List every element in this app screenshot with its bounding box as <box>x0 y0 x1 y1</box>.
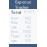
staticText: $33 <box>25 39 31 43</box>
staticText: Café <box>11 26 17 29</box>
staticText: $1,071 <box>24 10 35 14</box>
staticText: Expense Tracker <box>15 0 31 10</box>
staticText: $5 <box>27 26 31 29</box>
staticText: $12 <box>25 21 31 25</box>
staticText: Gym <box>11 39 16 43</box>
staticText: Rent <box>11 30 18 34</box>
staticText: $900 <box>23 30 31 34</box>
staticText: Total <box>11 10 21 15</box>
staticText: Power <box>11 35 20 38</box>
staticText: Food <box>11 17 18 20</box>
staticText: $78 <box>25 35 31 38</box>
staticText: Ride <box>11 21 18 25</box>
staticText: $42 <box>25 17 31 20</box>
